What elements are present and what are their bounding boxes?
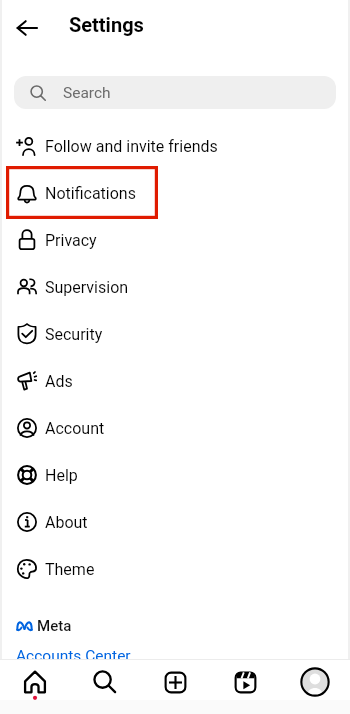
button[interactable]: Search [14,76,336,109]
staticText: Account [45,419,105,438]
staticText: Notifications [45,184,136,203]
button[interactable]: Back [0,0,54,55]
staticText: Security [45,325,103,344]
button[interactable]: Theme [0,545,350,592]
staticText: Help [45,466,78,485]
button[interactable]: About [0,498,350,545]
button[interactable]: Help [0,451,350,498]
button[interactable]: Create [140,662,210,702]
button[interactable]: Search [70,662,140,702]
button[interactable]: Home [0,662,70,702]
staticText: Ads [45,372,73,391]
button[interactable]: Ads [0,357,350,404]
button[interactable]: Follow and invite friends [0,122,350,169]
button[interactable]: Privacy [0,216,350,263]
button[interactable]: Security [0,310,350,357]
button[interactable]: Profile [280,662,350,702]
staticText: Supervision [45,278,129,297]
staticText: Settings [69,13,144,36]
button[interactable]: Account [0,404,350,451]
staticText: Theme [45,560,95,579]
staticText: About [45,513,88,532]
staticText: Privacy [45,231,97,250]
staticText: Meta [37,617,72,633]
staticText: Accounts Center [16,647,131,665]
staticText: Search [63,84,111,102]
staticText: Follow and invite friends [45,137,218,156]
button[interactable]: Reels [210,662,280,702]
button[interactable]: Supervision [0,263,350,310]
button[interactable]: Notifications [0,169,350,216]
